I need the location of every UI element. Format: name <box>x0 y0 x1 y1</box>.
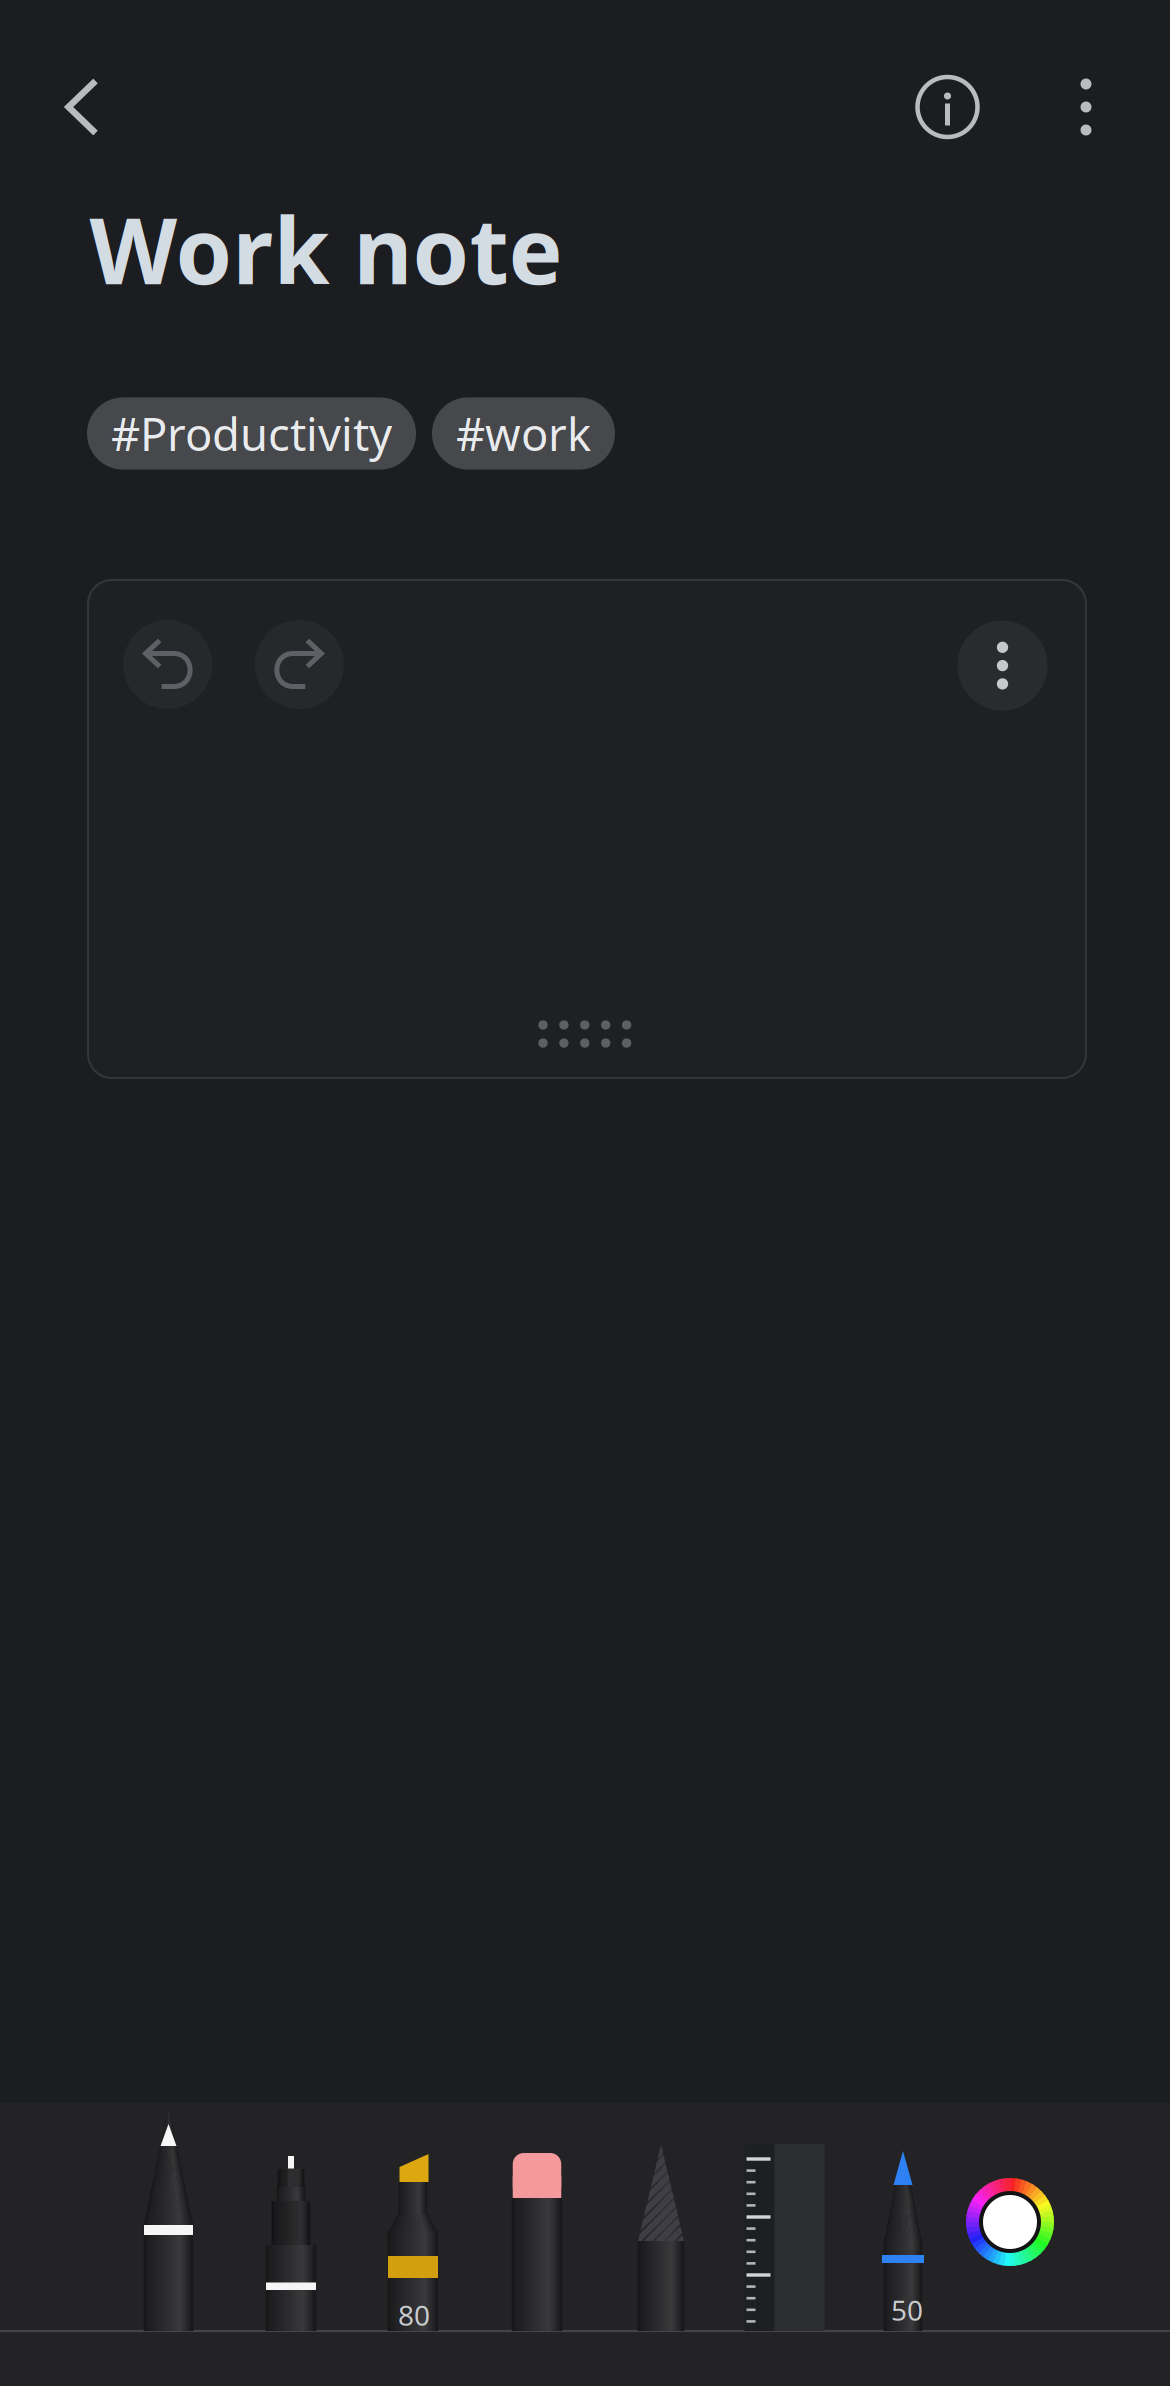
button[interactable]: Highlighter, size 80 <box>0 0 1170 2386</box>
button[interactable]: Pencil <box>0 0 1170 2386</box>
button[interactable]: #Productivity <box>87 397 416 470</box>
button[interactable]: Undo <box>122 618 214 710</box>
staticText: #Productivity <box>111 403 392 464</box>
button[interactable]: Fineliner <box>0 0 1170 2386</box>
button[interactable]: Eraser <box>0 0 1170 2386</box>
button[interactable]: Colour picker <box>966 2178 1054 2266</box>
button[interactable]: More options <box>1040 51 1132 163</box>
button[interactable]: Back <box>26 51 138 163</box>
button[interactable]: Redo <box>253 618 345 710</box>
button[interactable]: #work <box>432 397 615 470</box>
button[interactable]: Canvas options <box>956 620 1048 712</box>
button[interactable]: Charcoal <box>0 0 1170 2386</box>
staticText: 80 <box>398 2296 430 2334</box>
button[interactable]: Pen, size 50 <box>0 0 1170 2386</box>
staticText: #work <box>456 403 591 464</box>
button[interactable]: Note info <box>891 51 1003 163</box>
staticText: 50 <box>891 2291 923 2329</box>
button[interactable]: Ruler <box>0 0 1170 2386</box>
staticText: Work note <box>89 189 562 309</box>
